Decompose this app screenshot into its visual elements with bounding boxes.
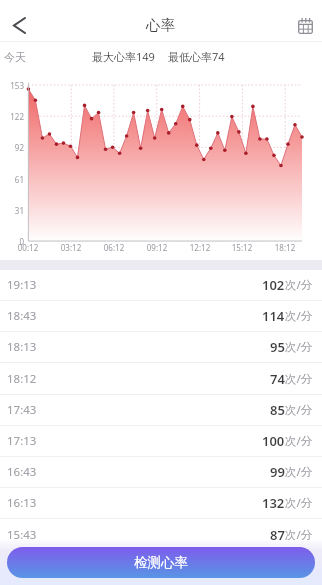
staticText: 114	[262, 307, 285, 325]
staticText: 次/分	[285, 433, 313, 449]
button[interactable]: 15:43	[0, 520, 322, 540]
staticText: 最大心率149	[92, 49, 155, 64]
staticText: 16:13	[7, 495, 37, 511]
staticText: 次/分	[285, 277, 313, 293]
button[interactable]: 16:43	[0, 457, 322, 488]
staticText: 17:43	[7, 402, 37, 418]
staticText: 122	[0, 111, 24, 122]
staticText: 87	[270, 526, 285, 540]
staticText: 次/分	[285, 495, 313, 511]
staticText: 16:43	[7, 464, 37, 480]
staticText: 今天	[4, 50, 26, 64]
staticText: 09:12	[137, 242, 177, 253]
staticText: 00:12	[8, 242, 48, 253]
button[interactable]: Calendar	[298, 18, 314, 34]
staticText: 18:12	[7, 371, 37, 387]
staticText: 18:43	[7, 308, 37, 324]
button[interactable]: 18:13	[0, 332, 322, 363]
staticText: 次/分	[285, 339, 313, 355]
staticText: 15:12	[222, 242, 262, 253]
staticText: 次/分	[285, 402, 313, 418]
button[interactable]: 19:13	[0, 270, 322, 301]
staticText: 95	[270, 338, 285, 356]
staticText: 99	[270, 463, 285, 481]
staticText: 153	[0, 80, 24, 91]
button[interactable]: 18:12	[0, 364, 322, 395]
button[interactable]: 检测心率	[7, 547, 315, 578]
staticText: 102	[262, 276, 285, 294]
staticText: 0	[0, 236, 24, 247]
staticText: 31	[0, 205, 24, 216]
staticText: 74	[270, 370, 285, 388]
staticText: 检测心率	[134, 554, 188, 571]
staticText: 92	[0, 142, 24, 153]
button[interactable]: 17:13	[0, 426, 322, 457]
button[interactable]: 18:43	[0, 301, 322, 332]
staticText: 61	[0, 174, 24, 185]
staticText: 18:12	[265, 242, 305, 253]
staticText: 最低心率74	[168, 49, 225, 64]
staticText: 132	[262, 494, 285, 512]
staticText: 15:43	[7, 527, 37, 540]
staticText: 次/分	[285, 464, 313, 480]
staticText: 心率	[146, 16, 175, 34]
staticText: 19:13	[7, 277, 37, 293]
button[interactable]: Back	[0, 8, 38, 42]
staticText: 03:12	[51, 242, 91, 253]
staticText: 85	[270, 401, 285, 419]
staticText: 次/分	[285, 308, 313, 324]
staticText: 06:12	[94, 242, 134, 253]
button[interactable]: 16:13	[0, 488, 322, 519]
staticText: 18:13	[7, 339, 37, 355]
staticText: 12:12	[180, 242, 220, 253]
staticText: 17:13	[7, 433, 37, 449]
staticText: 100	[262, 432, 285, 450]
staticText: 次/分	[285, 371, 313, 387]
button[interactable]: 17:43	[0, 395, 322, 426]
staticText: 次/分	[285, 527, 313, 540]
